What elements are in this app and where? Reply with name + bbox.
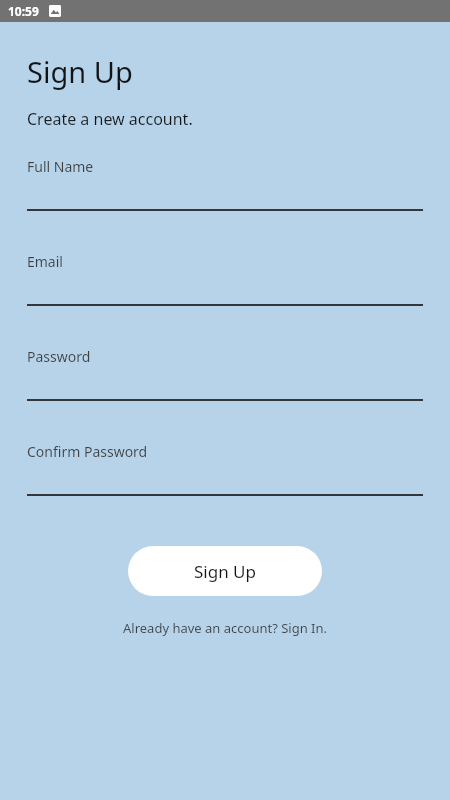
staticText: Sign Up xyxy=(194,560,256,583)
staticText: Confirm Password xyxy=(27,442,148,461)
staticText: Create a new account. xyxy=(27,108,193,130)
staticText: 10:59 xyxy=(8,3,39,19)
button[interactable]: Email xyxy=(27,252,423,306)
button[interactable]: Confirm Password xyxy=(27,442,423,496)
button[interactable]: Password xyxy=(27,347,423,401)
staticText: Full Name xyxy=(27,157,94,176)
staticText: Password xyxy=(27,347,91,366)
staticText: Sign Up xyxy=(27,52,133,91)
button[interactable]: Already have an account? Sign In. xyxy=(115,617,335,639)
staticText: Already have an account? Sign In. xyxy=(123,619,327,637)
button[interactable]: Full Name xyxy=(27,157,423,211)
staticText: Email xyxy=(27,252,63,271)
button[interactable]: Sign Up xyxy=(128,546,322,596)
